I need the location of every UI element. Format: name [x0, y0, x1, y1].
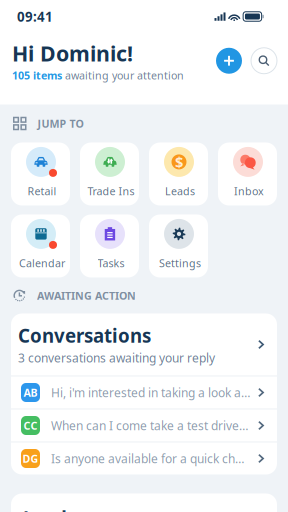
staticText: awaiting your attention [62, 68, 184, 82]
staticText: Settings [159, 256, 201, 270]
button[interactable]: CC [11, 409, 277, 441]
staticText: Trade Ins [87, 184, 134, 198]
staticText: Leads [23, 505, 76, 512]
button[interactable]: Inbox [218, 142, 277, 205]
staticText: DG [22, 451, 38, 466]
staticText: 09:41 [17, 8, 53, 25]
button[interactable]: Settings [149, 214, 208, 277]
staticText: 3 conversations awaiting your reply [18, 350, 215, 366]
staticText: Retail [27, 184, 56, 198]
staticText: AB [23, 385, 37, 400]
staticText: $ [175, 152, 183, 172]
button[interactable]: $ [149, 142, 208, 205]
staticText: 105 items [12, 68, 62, 82]
button[interactable]: DG [11, 442, 277, 474]
button[interactable]: Calendar [11, 214, 70, 277]
staticText: Conversations [18, 323, 151, 348]
staticText: Is anyone available for a quick chat on.… [51, 450, 250, 466]
staticText: CC [23, 418, 37, 433]
staticText: When can I come take a test drive of ... [51, 417, 250, 433]
staticText: AWAITING ACTION [37, 288, 136, 303]
button[interactable]: Retail [11, 142, 70, 205]
button[interactable]: Conversations [11, 313, 277, 375]
button[interactable]: Add [216, 48, 242, 74]
staticText: JUMP TO [37, 116, 83, 131]
staticText: Inbox [234, 184, 264, 198]
button[interactable]: AB [11, 376, 277, 408]
staticText: Hi, i'm interested in taking a look at t… [51, 384, 250, 400]
button[interactable]: Trade Ins [80, 142, 139, 205]
button[interactable]: Tasks [80, 214, 139, 277]
staticText: Leads [165, 184, 195, 198]
staticText: Hi Dominic! [12, 39, 133, 67]
staticText: Calendar [19, 256, 65, 270]
staticText: Tasks [97, 256, 124, 270]
button[interactable]: Search [251, 48, 277, 74]
